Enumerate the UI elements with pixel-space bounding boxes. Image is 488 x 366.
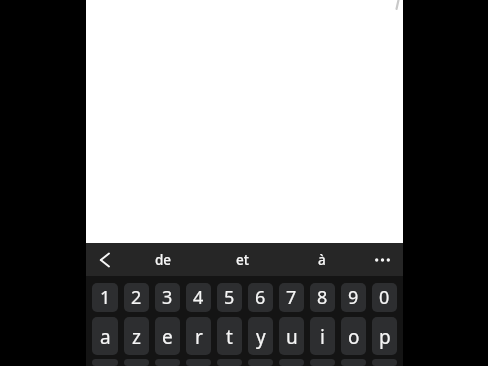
staticText: p [379, 324, 391, 350]
button[interactable]: 3 [155, 283, 180, 312]
button[interactable]: 4 [186, 283, 211, 312]
staticText: 6 [255, 285, 266, 310]
staticText: o [348, 324, 360, 350]
button[interactable]: m [372, 359, 397, 366]
button[interactable] [361, 243, 403, 276]
button[interactable]: 2 [124, 283, 149, 312]
button[interactable]: h [248, 359, 273, 366]
button[interactable]: 7 [279, 283, 304, 312]
staticText: et [236, 251, 249, 269]
staticText: i [320, 324, 325, 350]
button[interactable]: u [279, 317, 304, 355]
button[interactable]: y [248, 317, 273, 355]
button[interactable]: s [124, 359, 149, 366]
button[interactable]: 1 [92, 283, 118, 312]
staticText: 8 [317, 285, 328, 310]
staticText: 1 [100, 285, 111, 310]
staticText: t [226, 324, 233, 350]
button[interactable]: e [155, 317, 180, 355]
button[interactable]: 0 [372, 283, 397, 312]
staticText: u [286, 324, 298, 350]
button[interactable]: k [310, 359, 335, 366]
button[interactable]: p [372, 317, 397, 355]
staticText: à [318, 251, 326, 269]
button[interactable]: r [186, 317, 211, 355]
staticText: 7 [286, 285, 297, 310]
button[interactable]: 8 [310, 283, 335, 312]
button[interactable]: j [279, 359, 304, 366]
button[interactable]: o [341, 317, 366, 355]
button[interactable] [86, 243, 123, 276]
staticText: 9 [348, 285, 359, 310]
staticText: de [155, 251, 172, 269]
button[interactable]: a [92, 317, 118, 355]
button[interactable]: 6 [248, 283, 273, 312]
staticText: y [256, 324, 266, 350]
staticText: 4 [193, 285, 204, 310]
button[interactable]: 9 [341, 283, 366, 312]
staticText: z [132, 324, 141, 350]
button[interactable]: z [124, 317, 149, 355]
button[interactable]: 5 [217, 283, 242, 312]
button[interactable]: et [203, 243, 282, 276]
staticText: r [195, 324, 203, 350]
staticText: 0 [379, 285, 390, 310]
staticText: 5 [224, 285, 235, 310]
button[interactable]: i [310, 317, 335, 355]
button[interactable]: t [217, 317, 242, 355]
staticText: e [162, 324, 173, 350]
staticText: 3 [162, 285, 173, 310]
button[interactable]: de [123, 243, 203, 276]
button[interactable]: f [186, 359, 211, 366]
button[interactable]: l [341, 359, 366, 366]
staticText: 2 [131, 285, 142, 310]
button[interactable]: g [217, 359, 242, 366]
button[interactable]: q [92, 359, 118, 366]
button[interactable]: d [155, 359, 180, 366]
button[interactable]: à [282, 243, 361, 276]
staticText: a [100, 324, 111, 350]
